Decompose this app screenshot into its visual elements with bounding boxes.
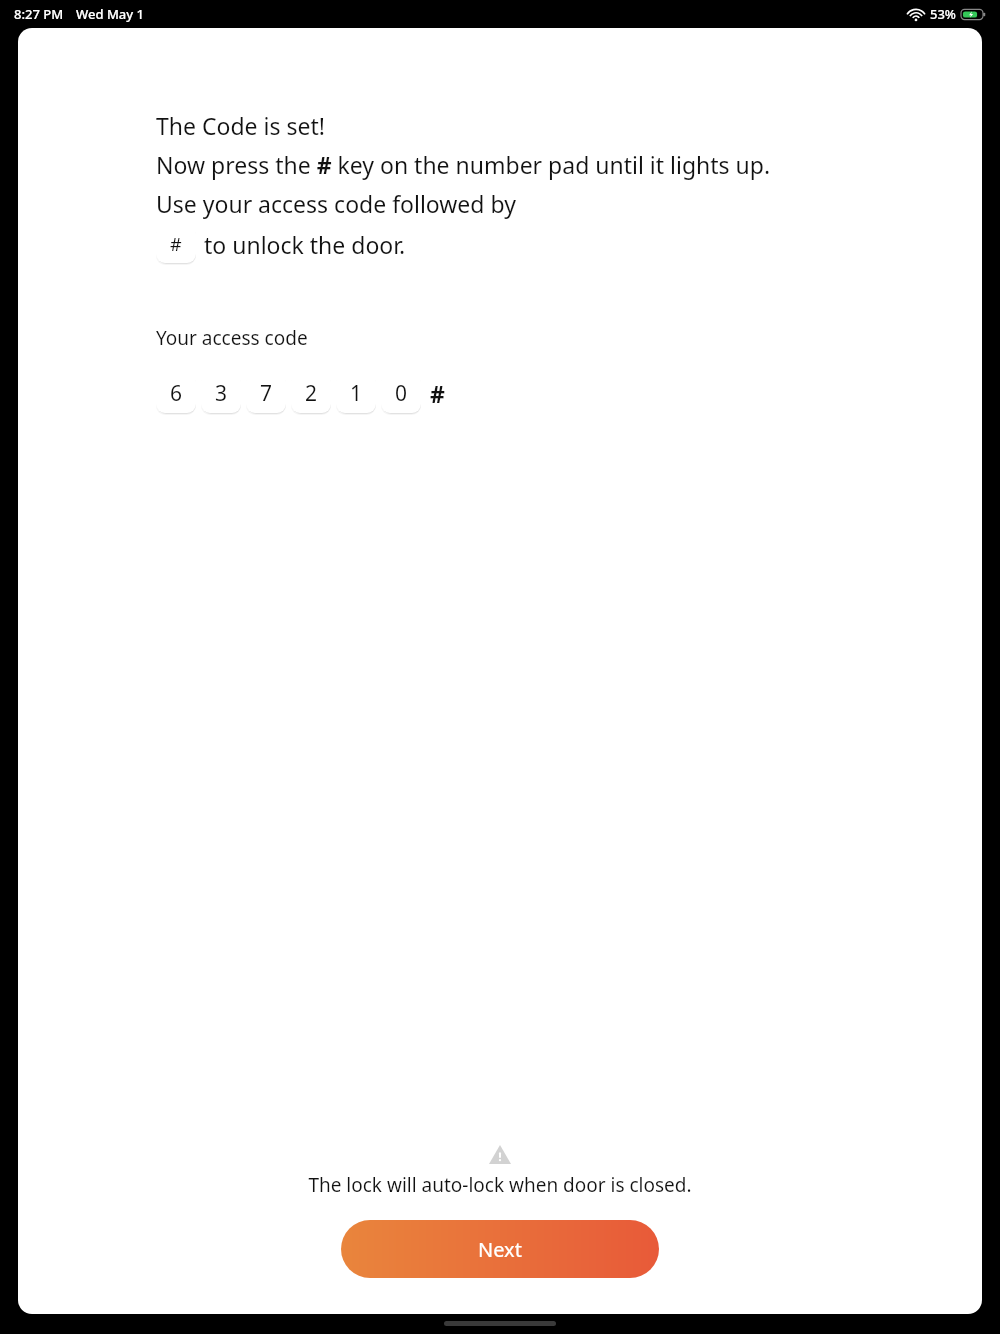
staticText: 53%	[930, 5, 956, 23]
staticText: Now press the # key on the number pad un…	[156, 149, 771, 180]
staticText: #	[430, 378, 445, 409]
staticText: 6	[170, 379, 183, 408]
staticText: 8:27 PM	[14, 5, 64, 23]
staticText: The Code is set!	[156, 110, 325, 141]
staticText: 3	[215, 379, 228, 408]
staticText: The lock will auto-lock when door is clo…	[18, 1172, 982, 1198]
button[interactable]: Next	[341, 1220, 659, 1278]
staticText: Wed May 1	[76, 5, 144, 23]
staticText: to unlock the door.	[204, 229, 406, 260]
staticText: 7	[260, 379, 273, 408]
button[interactable]: 2	[291, 373, 331, 413]
button[interactable]: 3	[201, 373, 241, 413]
staticText: #	[170, 232, 182, 257]
staticText: Your access code	[156, 325, 308, 351]
button[interactable]: #	[156, 225, 196, 263]
staticText: 0	[395, 379, 408, 408]
staticText: Next	[478, 1236, 522, 1263]
button[interactable]: 0	[381, 373, 421, 413]
staticText: Use your access code followed by	[156, 188, 516, 219]
staticText: 2	[305, 379, 318, 408]
staticText: 1	[350, 379, 363, 408]
button[interactable]: 7	[246, 373, 286, 413]
button[interactable]: 6	[156, 373, 196, 413]
button[interactable]: 1	[336, 373, 376, 413]
